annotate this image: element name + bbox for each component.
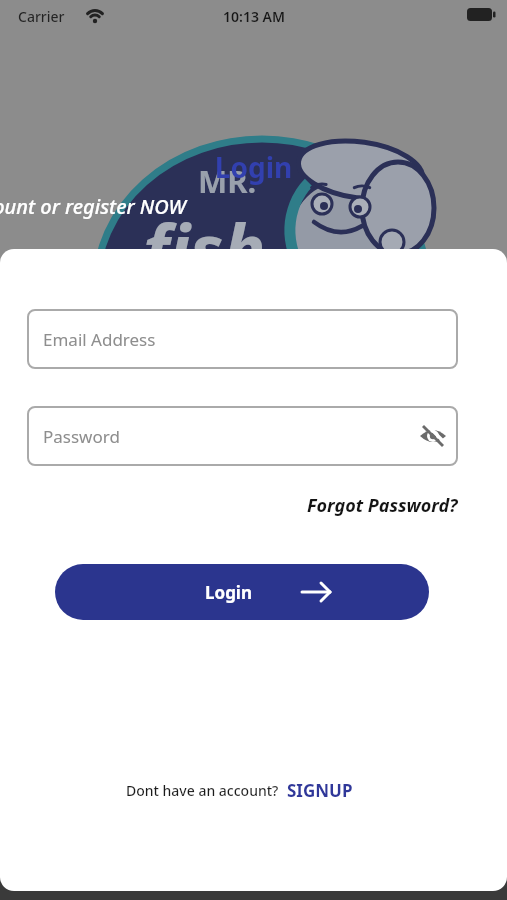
- staticText: Email Address: [43, 328, 156, 351]
- staticText: Login: [205, 581, 253, 604]
- staticText: 10:13 AM: [223, 7, 285, 26]
- staticText: Carrier: [18, 7, 65, 26]
- button[interactable]: Email Address: [27, 309, 458, 369]
- staticText: Password: [43, 425, 120, 448]
- staticText: count or register NOW: [0, 193, 186, 220]
- staticText: Dont have an account?: [126, 781, 279, 800]
- button[interactable]: Password: [27, 406, 458, 466]
- staticText: Login: [0, 148, 507, 186]
- button[interactable]: Dont have an account?: [126, 779, 353, 802]
- button[interactable]: [419, 422, 447, 450]
- staticText: MR.: [198, 160, 257, 202]
- staticText: fish: [143, 200, 266, 295]
- button[interactable]: Login: [55, 564, 429, 620]
- button[interactable]: Forgot Password?: [307, 493, 458, 518]
- staticText: SIGNUP: [287, 779, 353, 802]
